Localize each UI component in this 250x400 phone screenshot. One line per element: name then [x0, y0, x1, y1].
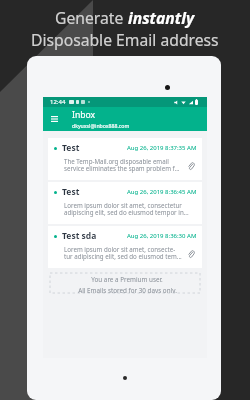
staticText: Test — [62, 142, 80, 154]
staticText: 12:44 — [50, 98, 66, 106]
staticText: Disposable Email address — [31, 29, 219, 50]
staticText: Aug 26, 2019 8:37:35 AM — [127, 144, 197, 152]
staticText: Inbox — [72, 109, 96, 121]
staticText: All Emails stored for 30 days only. — [78, 286, 177, 293]
staticText: Aug 26, 2019 8:36:30 AM — [127, 232, 197, 240]
staticText: The Temp-Mail.org disposable email servi… — [64, 157, 183, 173]
staticText: instantly — [128, 7, 195, 28]
button[interactable]: Test sda — [48, 226, 202, 268]
staticText: Aug 26, 2019 8:36:45 AM — [127, 188, 197, 196]
staticText: Test sda — [62, 230, 97, 242]
staticText: You are a Premium user. — [91, 275, 163, 284]
staticText: Lorem ipsum dolor sit amet, consectetur … — [64, 201, 194, 217]
button[interactable]: Test — [48, 138, 202, 180]
staticText: Test — [62, 186, 80, 198]
staticText: dkyuxsl@inbox888.com — [72, 122, 130, 129]
button[interactable]: Open navigation menu — [43, 107, 65, 131]
staticText: Lorem ipsum dolor sit amet, consecte-tur… — [64, 245, 183, 261]
staticText: Generate — [55, 7, 128, 28]
button[interactable]: Test — [48, 182, 202, 224]
